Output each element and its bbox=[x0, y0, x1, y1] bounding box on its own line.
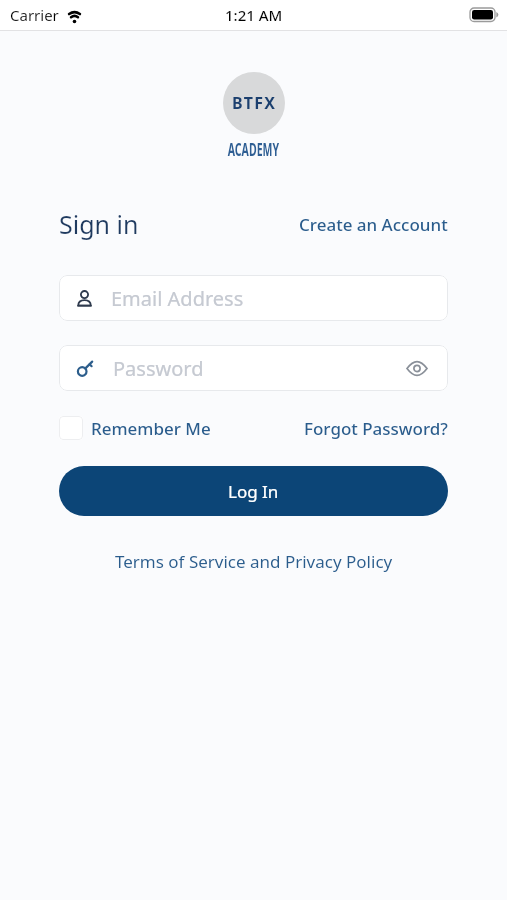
button[interactable]: Password bbox=[59, 345, 448, 391]
staticText: Log In bbox=[228, 480, 279, 503]
button[interactable]: Log In bbox=[59, 466, 448, 516]
staticText: Carrier bbox=[10, 5, 59, 25]
staticText: Forgot Password? bbox=[304, 417, 448, 440]
button[interactable]: Remember Me bbox=[59, 416, 211, 440]
staticText: Email Address bbox=[111, 285, 244, 312]
staticText: Sign in bbox=[59, 207, 139, 241]
staticText: Terms of Service and Privacy Policy bbox=[115, 550, 393, 573]
staticText: 1:21 AM bbox=[225, 5, 283, 25]
button[interactable]: Forgot Password? bbox=[304, 417, 448, 440]
staticText: Create an Account bbox=[299, 213, 448, 236]
staticText: ACADEMY bbox=[228, 138, 279, 161]
staticText: Remember Me bbox=[91, 417, 211, 440]
staticText: Password bbox=[113, 355, 204, 382]
button[interactable]: Terms of Service and Privacy Policy bbox=[115, 550, 393, 573]
button[interactable]: Email Address bbox=[59, 275, 448, 321]
staticText: BTFX bbox=[232, 92, 277, 114]
button[interactable]: Create an Account bbox=[299, 213, 448, 236]
